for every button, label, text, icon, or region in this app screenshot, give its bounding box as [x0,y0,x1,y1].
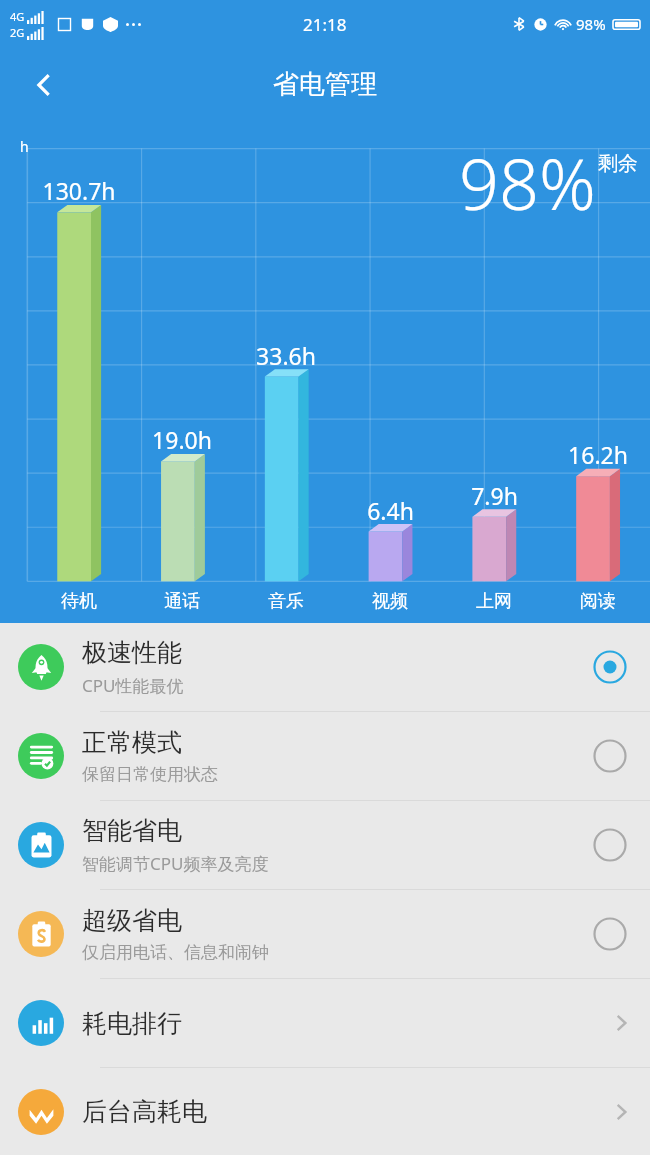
staticText: 极速性能 [82,637,182,668]
staticText: 16.2h [568,439,628,470]
staticText: 智能省电 [82,815,182,846]
staticText: 智能调节CPU频率及亮度 [82,852,269,875]
staticText: 音乐 [268,590,304,613]
staticText: 19.0h [152,424,212,455]
staticText: 阅读 [580,590,616,613]
staticText: 超级省电 [82,905,182,936]
staticText: 2G [10,25,25,40]
staticText: 130.7h [42,175,116,206]
staticText: 耗电排行 [82,1008,610,1039]
staticText: 省电管理 [273,68,377,101]
staticText: 21:18 [303,13,347,36]
staticText: 后台高耗电 [82,1096,610,1127]
staticText: 上网 [476,590,512,613]
staticText: 剩余 [598,151,638,176]
button[interactable]: 正常模式 [0,712,650,800]
staticText: 6.4h [367,495,414,526]
staticText: 正常模式 [82,727,182,758]
button[interactable]: 后台高耗电 [0,1068,650,1155]
staticText: 98% [576,14,606,34]
staticText: 通话 [164,590,200,613]
staticText: 视频 [372,590,408,613]
staticText: h [20,137,29,156]
staticText: 待机 [61,590,97,613]
button[interactable]: 耗电排行 [0,979,650,1067]
staticText: 仅启用电话、信息和闹钟 [82,942,269,963]
staticText: 98% [459,135,596,230]
staticText: 4G [10,9,25,24]
button[interactable]: 超级省电 [0,890,650,978]
button[interactable]: 智能省电 [0,801,650,889]
button[interactable]: 极速性能 [0,623,650,711]
staticText: CPU性能最优 [82,674,184,697]
staticText: 保留日常使用状态 [82,764,218,785]
staticText: 33.6h [256,340,316,371]
button[interactable]: Back [22,63,66,107]
staticText: 7.9h [471,480,518,511]
